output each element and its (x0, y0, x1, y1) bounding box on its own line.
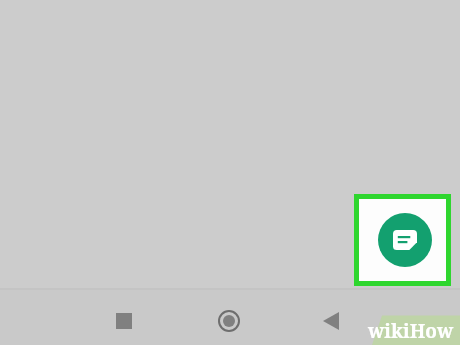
button[interactable]: Recent apps (100, 297, 148, 345)
button[interactable]: Start chat (378, 213, 432, 267)
button[interactable]: Back (307, 297, 355, 345)
button[interactable]: Home (205, 297, 253, 345)
staticText: wikiHow (368, 318, 454, 344)
